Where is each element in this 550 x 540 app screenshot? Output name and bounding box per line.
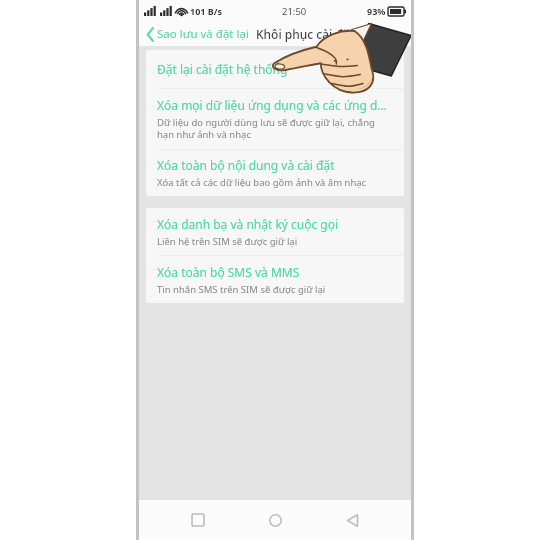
staticText: Đặt lại cài đặt hệ thống — [157, 61, 288, 77]
button[interactable]: Sao lưu và đặt lại — [146, 24, 250, 44]
staticText: 101 B/s — [190, 5, 223, 17]
staticText: Dữ liệu do người dùng lưu sẽ được giữ lạ… — [157, 116, 393, 141]
button[interactable]: Xóa toàn bộ nội dung và cài đặt — [146, 150, 404, 196]
staticText: 93% — [367, 5, 386, 17]
staticText: Xóa tất cả các dữ liệu bao gồm ảnh và âm… — [157, 176, 367, 189]
staticText: Liên hệ trên SIM sẽ được giữ lại — [157, 235, 298, 248]
button[interactable]: Home — [257, 502, 293, 538]
staticText: Xóa toàn bộ nội dung và cài đặt — [157, 157, 335, 173]
button[interactable]: Recent apps — [180, 502, 216, 538]
button[interactable]: Xóa danh bạ và nhật ký cuộc gọi — [146, 208, 404, 255]
button[interactable]: Đặt lại cài đặt hệ thống — [146, 50, 404, 88]
button[interactable]: Back — [334, 502, 370, 538]
staticText: 21:50 — [282, 5, 307, 18]
staticText: Xóa toàn bộ SMS và MMS — [157, 264, 300, 280]
staticText: Sao lưu và đặt lại — [157, 26, 249, 42]
button[interactable]: Xóa mọi dữ liệu ứng dụng và các ứng dụng… — [146, 89, 404, 149]
button[interactable]: Xóa toàn bộ SMS và MMS — [146, 256, 404, 303]
staticText: Xóa danh bạ và nhật ký cuộc gọi — [157, 216, 339, 232]
staticText: Tin nhắn SMS trên SIM sẽ được giữ lại — [157, 283, 326, 296]
staticText: Xóa mọi dữ liệu ứng dụng và các ứng dụng… — [157, 97, 393, 113]
staticText: Khôi phục cài đặt gốc — [256, 26, 379, 42]
